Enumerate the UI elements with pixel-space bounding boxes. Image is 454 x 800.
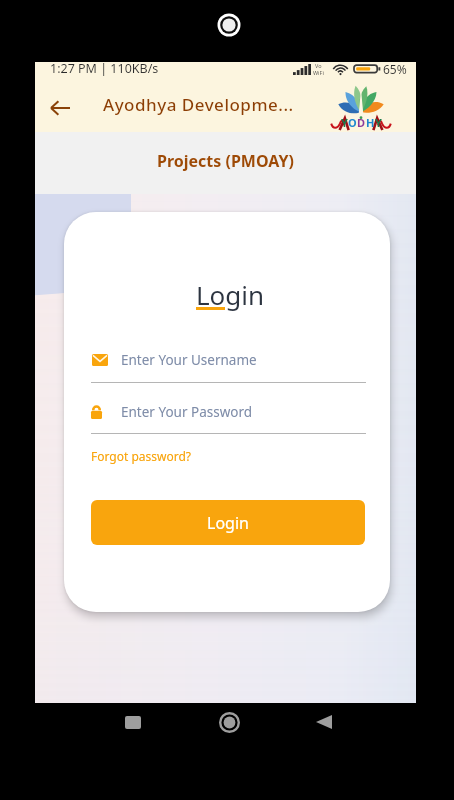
staticText: WiFi bbox=[313, 69, 324, 76]
button[interactable]: Recents bbox=[113, 702, 153, 742]
button[interactable]: Ayodhya logo bbox=[330, 85, 392, 131]
button[interactable]: Back bbox=[304, 702, 344, 742]
button[interactable]: Login bbox=[91, 500, 365, 545]
staticText: Vo bbox=[315, 62, 322, 69]
staticText: Login bbox=[196, 277, 265, 312]
staticText: 65% bbox=[383, 61, 407, 77]
staticText: Y bbox=[341, 115, 348, 130]
staticText: Projects (PMOAY) bbox=[157, 150, 294, 172]
staticText: Y bbox=[375, 115, 382, 130]
staticText: 1:27 PM | 110KB/s bbox=[50, 60, 159, 77]
button[interactable]: Home bbox=[209, 702, 249, 742]
staticText: H bbox=[366, 115, 375, 130]
button[interactable]: Back bbox=[43, 91, 77, 125]
staticText: Forgot password? bbox=[91, 448, 192, 464]
staticText: D bbox=[357, 115, 366, 130]
button[interactable]: Forgot password? bbox=[91, 448, 192, 464]
staticText: Login bbox=[207, 512, 249, 534]
staticText: Ayodhya Developme... bbox=[103, 93, 294, 116]
staticText: Enter Your Username bbox=[121, 351, 257, 369]
staticText: Enter Your Password bbox=[121, 403, 253, 421]
staticText: O bbox=[348, 115, 357, 130]
